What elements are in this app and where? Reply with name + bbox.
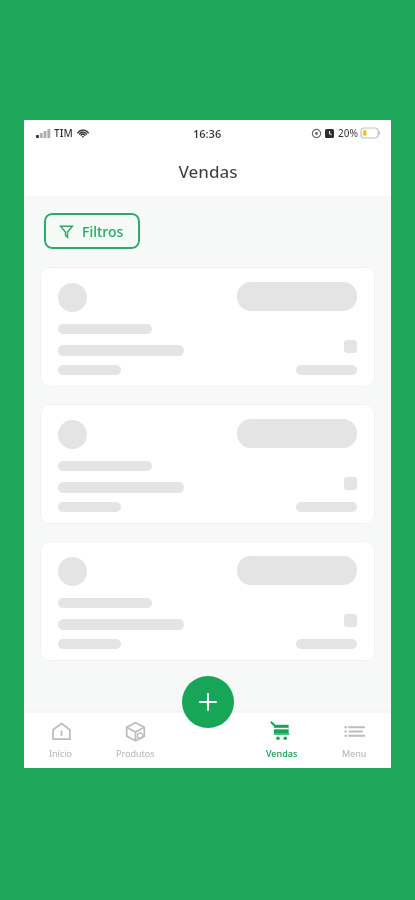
staticText: Produtos: [116, 747, 155, 759]
staticText: 16:36: [193, 126, 222, 141]
staticText: TIM: [54, 126, 73, 140]
staticText: Início: [49, 747, 73, 759]
staticText: Vendas: [266, 747, 298, 759]
button[interactable]: Vendas: [245, 712, 318, 768]
button[interactable]: Produtos: [98, 712, 172, 768]
button[interactable]: Filtros: [44, 213, 140, 249]
button[interactable]: [40, 541, 375, 661]
staticText: Menu: [342, 747, 367, 759]
button[interactable]: [40, 404, 375, 524]
button[interactable]: Início: [24, 712, 98, 768]
button[interactable]: Adicionar venda: [182, 676, 234, 728]
staticText: Filtros: [82, 222, 124, 241]
staticText: Vendas: [178, 160, 238, 183]
button[interactable]: [40, 267, 375, 387]
button[interactable]: Menu: [318, 712, 391, 768]
staticText: 20%: [338, 126, 358, 140]
